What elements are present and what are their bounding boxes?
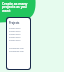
staticText: Project item <box>9 39 21 42</box>
button[interactable]: Projects <box>7 18 30 69</box>
button[interactable]: Project item <box>9 27 28 30</box>
button[interactable]: Completed task <box>9 47 28 50</box>
staticText: Project item <box>9 30 21 33</box>
button[interactable]: Project item <box>9 30 28 33</box>
staticText: Project item <box>9 27 21 30</box>
staticText: Project item <box>9 36 21 39</box>
button[interactable]: Completed task <box>9 50 28 53</box>
staticText: Project item <box>9 33 21 36</box>
staticText: Completed task <box>9 47 24 50</box>
button[interactable]: Project item <box>9 33 28 36</box>
staticText: Completed task <box>9 50 24 53</box>
staticText: Projects <box>9 21 20 25</box>
staticText: Create as many projects as you want <box>2 1 28 13</box>
button[interactable]: Project item <box>9 36 28 39</box>
button[interactable]: Project item <box>9 39 28 42</box>
